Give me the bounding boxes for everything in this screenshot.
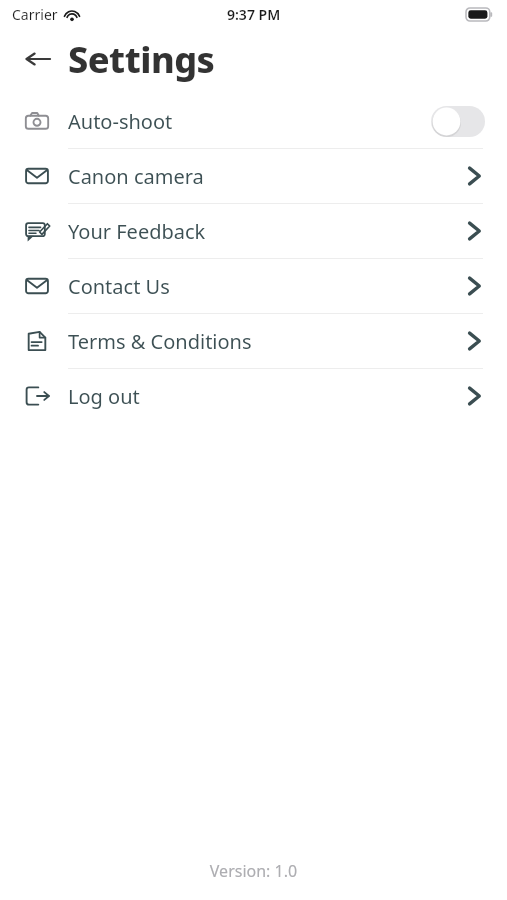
button[interactable]: Auto-shoot toggle: [431, 106, 485, 137]
staticText: Terms & Conditions: [68, 328, 252, 355]
button[interactable]: Canon camera: [0, 149, 507, 204]
button[interactable]: Terms & Conditions: [0, 314, 507, 369]
button[interactable]: Back: [18, 39, 58, 79]
button[interactable]: Log out: [0, 369, 507, 423]
staticText: Carrier: [12, 5, 58, 24]
staticText: Version: 1.0: [0, 860, 507, 882]
staticText: Canon camera: [68, 163, 204, 190]
staticText: Auto-shoot: [68, 108, 173, 135]
staticText: Settings: [68, 35, 215, 84]
button[interactable]: Contact Us: [0, 259, 507, 314]
staticText: 9:37 PM: [227, 5, 281, 24]
staticText: Contact Us: [68, 273, 170, 300]
staticText: Log out: [68, 383, 140, 410]
button[interactable]: Your Feedback: [0, 204, 507, 259]
staticText: Your Feedback: [68, 218, 206, 245]
button[interactable]: Auto-shoot: [0, 94, 507, 149]
